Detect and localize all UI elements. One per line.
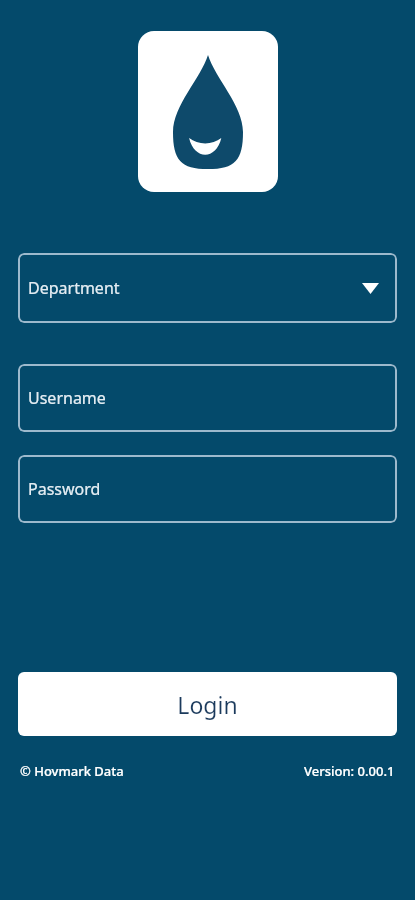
button[interactable]: Password [18,455,397,523]
button[interactable]: Login [18,672,397,736]
staticText: Version: 0.00.1 [304,762,395,780]
staticText: Password [28,478,101,500]
staticText: © Hovmark Data [20,762,124,780]
button[interactable]: Username [18,364,397,432]
button[interactable]: Department [18,253,397,323]
staticText: Login [177,689,238,720]
other: App logo [138,31,278,192]
staticText: Department [28,277,120,299]
staticText: Username [28,387,106,409]
